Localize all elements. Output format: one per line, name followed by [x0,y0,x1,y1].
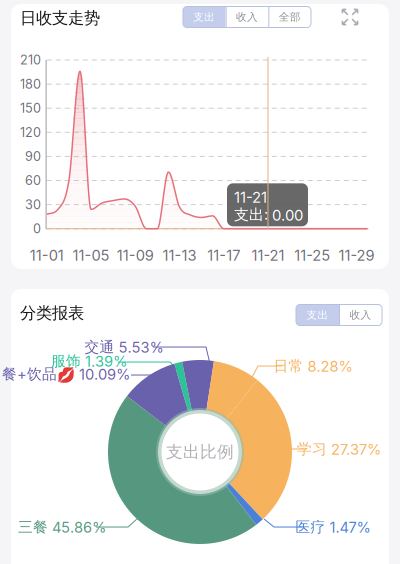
staticText: 支出 [193,10,215,24]
staticText: 180 [20,76,41,92]
staticText: 210 [20,52,41,68]
staticText: 交通 5.53% [84,338,163,356]
staticText: 支出比例 [166,441,234,462]
staticText: 11-13 [162,247,196,264]
staticText: 90 [25,149,41,164]
staticText: 收入 [349,308,371,322]
button[interactable]: 支出 [296,304,339,325]
staticText: 11-17 [207,247,240,264]
staticText: 三餐 45.86% [18,518,106,536]
staticText: 分类报表 [20,303,84,323]
staticText: 日常 8.28% [273,357,352,375]
button[interactable]: 收入 [339,304,382,325]
staticText: 11-29 [338,247,374,264]
button[interactable]: 全部 [268,6,311,27]
staticText: 日收支走势 [20,8,100,28]
staticText: 0 [33,221,41,236]
staticText: 服饰 1.39% [51,352,127,370]
staticText: 30 [25,197,41,212]
staticText: 医疗 1.47% [295,518,370,536]
button[interactable]: 全屏 [336,3,364,31]
staticText: 11-21 [251,247,284,264]
button[interactable]: 收入 [226,6,268,27]
staticText: 120 [20,125,41,140]
staticText: 收入 [236,10,258,24]
staticText: 11-01 [30,247,64,264]
staticText: 11-09 [117,247,154,264]
staticText: 支出: 0.00 [234,205,303,224]
staticText: 150 [20,100,41,116]
staticText: 学习 27.37% [297,440,381,458]
staticText: 餐+饮品💋 10.09% [2,365,130,383]
staticText: 11-25 [294,247,330,264]
button[interactable]: 支出 [183,6,226,27]
staticText: 全部 [279,10,301,24]
staticText: 60 [25,173,41,188]
staticText: 支出 [306,308,328,322]
staticText: 11-05 [72,247,109,264]
staticText: 11-21 [234,188,267,206]
